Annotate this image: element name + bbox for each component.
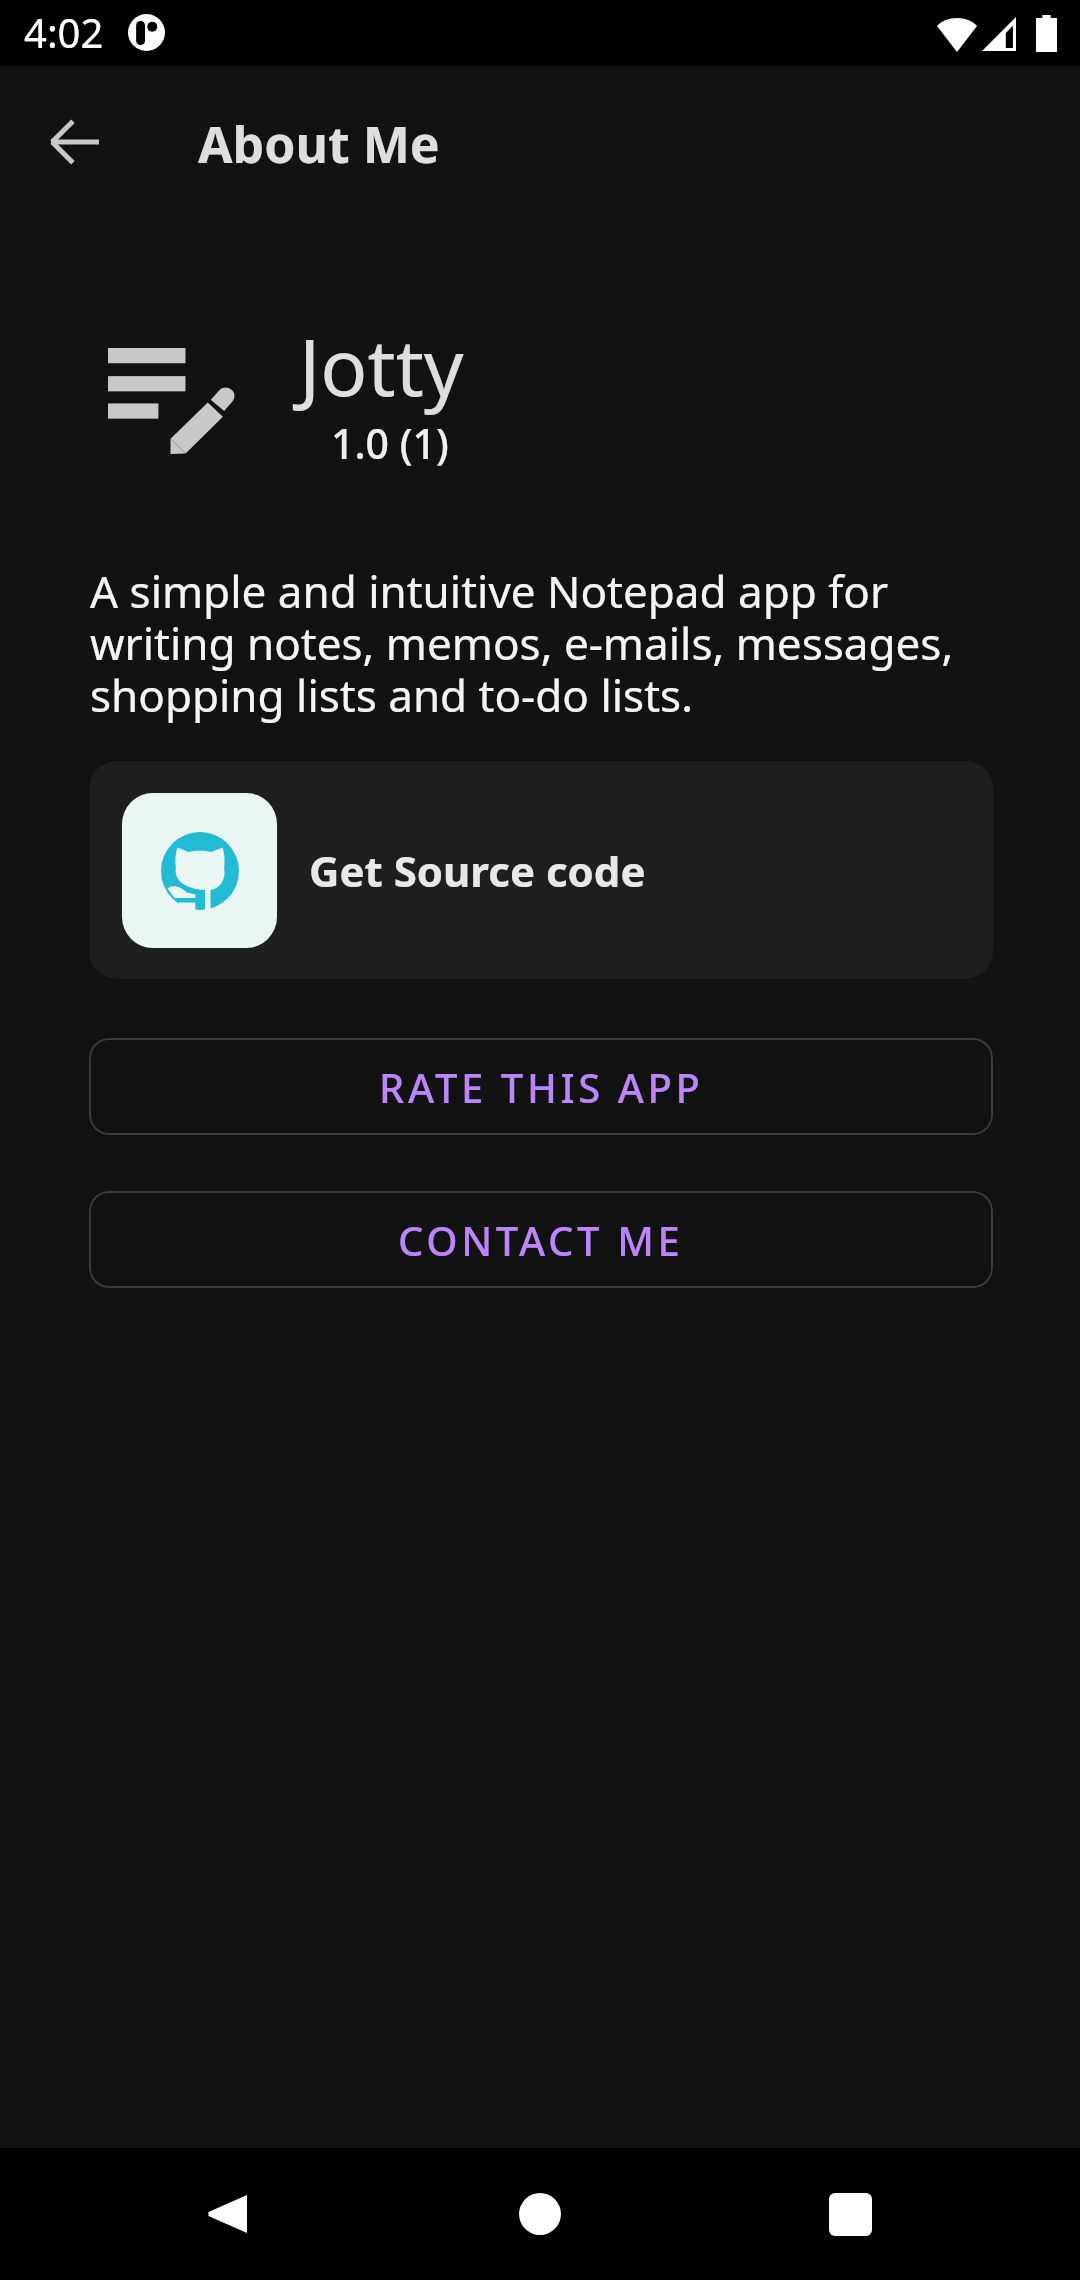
button[interactable]: RATE THIS APP bbox=[89, 1038, 993, 1135]
button[interactable]: Back bbox=[166, 2154, 286, 2274]
staticText: RATE THIS APP bbox=[379, 1060, 704, 1114]
button[interactable]: Get Source code bbox=[89, 761, 993, 979]
staticText: Get Source code bbox=[309, 842, 646, 899]
staticText: 4:02 bbox=[24, 5, 104, 59]
button[interactable]: Home bbox=[480, 2154, 600, 2274]
button[interactable]: CONTACT ME bbox=[89, 1191, 993, 1288]
staticText: Jotty bbox=[299, 313, 464, 419]
staticText: 1.0 (1) bbox=[331, 415, 449, 471]
button[interactable]: Recent apps bbox=[790, 2154, 910, 2274]
staticText: About Me bbox=[198, 110, 440, 178]
staticText: CONTACT ME bbox=[398, 1213, 684, 1267]
button[interactable]: Navigate up bbox=[27, 94, 123, 190]
other: Jotty app icon bbox=[108, 348, 234, 453]
staticText: A simple and intuitive Notepad app for w… bbox=[90, 561, 990, 725]
